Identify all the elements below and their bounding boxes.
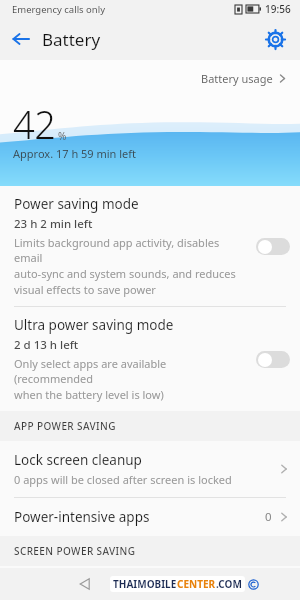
- staticText: 2 d 13 h left: [14, 337, 79, 353]
- button[interactable]: Ultra power saving mode: [0, 307, 300, 411]
- staticText: Only select apps are available (recommen…: [14, 356, 248, 386]
- button[interactable]: Power saving mode: [0, 186, 300, 306]
- staticText: auto-sync and system sounds, and reduces: [14, 266, 236, 281]
- staticText: APP POWER SAVING: [14, 419, 116, 433]
- button[interactable]: Power-intensive apps: [0, 498, 300, 536]
- staticText: 0 apps will be closed after screen is lo…: [14, 472, 232, 487]
- button[interactable]: Toggle: [256, 351, 290, 368]
- staticText: 42: [13, 98, 56, 150]
- staticText: .COM: [216, 577, 242, 591]
- staticText: Battery: [42, 28, 101, 51]
- staticText: 19:56: [265, 2, 291, 16]
- staticText: Lock screen cleanup: [14, 451, 142, 469]
- staticText: THAIMOBILE: [113, 577, 177, 591]
- staticText: Emergency calls only: [12, 3, 106, 16]
- staticText: 0: [265, 509, 272, 525]
- button[interactable]: Back: [69, 568, 101, 600]
- staticText: 23 h 2 min left: [14, 216, 93, 232]
- staticText: when the battery level is low): [14, 387, 164, 402]
- staticText: Power saving mode: [14, 195, 139, 213]
- staticText: CENTER: [177, 577, 216, 591]
- button[interactable]: Back: [0, 18, 42, 60]
- staticText: Power-intensive apps: [14, 508, 150, 526]
- staticText: Battery usage: [201, 71, 273, 86]
- button[interactable]: Toggle: [256, 238, 290, 255]
- staticText: visual effects to save power: [14, 282, 156, 297]
- staticText: Approx. 17 h 59 min left: [13, 146, 137, 161]
- staticText: Ultra power saving mode: [14, 316, 174, 334]
- staticText: Limits background app activity, disables…: [14, 235, 248, 265]
- staticText: %: [58, 129, 67, 143]
- staticText: SCREEN POWER SAVING: [14, 544, 136, 558]
- button[interactable]: Lock screen cleanup: [0, 441, 300, 497]
- button[interactable]: Settings: [256, 20, 294, 58]
- button[interactable]: Battery usage: [198, 68, 290, 89]
